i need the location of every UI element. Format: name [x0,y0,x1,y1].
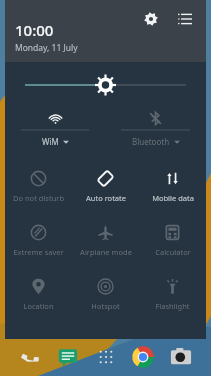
staticText: WiM [42,136,59,147]
staticText: Location [23,301,54,311]
button[interactable]: Brightness [25,75,186,95]
staticText: Calculator [155,247,191,257]
staticText: Mobile data [152,193,194,203]
staticText: Hotspot [91,301,120,311]
button[interactable]: Settings [140,8,162,30]
button[interactable]: Apps [92,343,120,371]
button[interactable]: Mobile data [139,161,206,215]
button[interactable]: Bluetooth [105,107,206,157]
staticText: Monday, 11 July [15,42,78,54]
button[interactable]: WiM [5,107,105,157]
button[interactable]: Location [5,269,72,323]
button[interactable]: Flashlight [139,269,206,323]
button[interactable]: Calculator [139,215,206,269]
staticText: Airplane mode [80,247,132,257]
button[interactable]: Hotspot [72,269,139,323]
staticText: Bluetooth [132,136,170,147]
button[interactable]: Messages [54,343,82,371]
staticText: Flashlight [155,301,190,311]
button[interactable]: Extreme saver [5,215,72,269]
button[interactable]: Auto rotate [72,161,139,215]
staticText: Do not disturb [13,193,64,203]
staticText: 10:00 [15,20,54,40]
button[interactable]: Do not disturb [5,161,72,215]
button[interactable]: Camera [167,343,195,371]
staticText: Extreme saver [13,247,64,257]
button[interactable]: Edit [174,8,196,30]
button[interactable]: Chrome [129,343,157,371]
button[interactable]: Phone [16,343,44,371]
staticText: Auto rotate [86,193,126,203]
button[interactable]: Airplane mode [72,215,139,269]
